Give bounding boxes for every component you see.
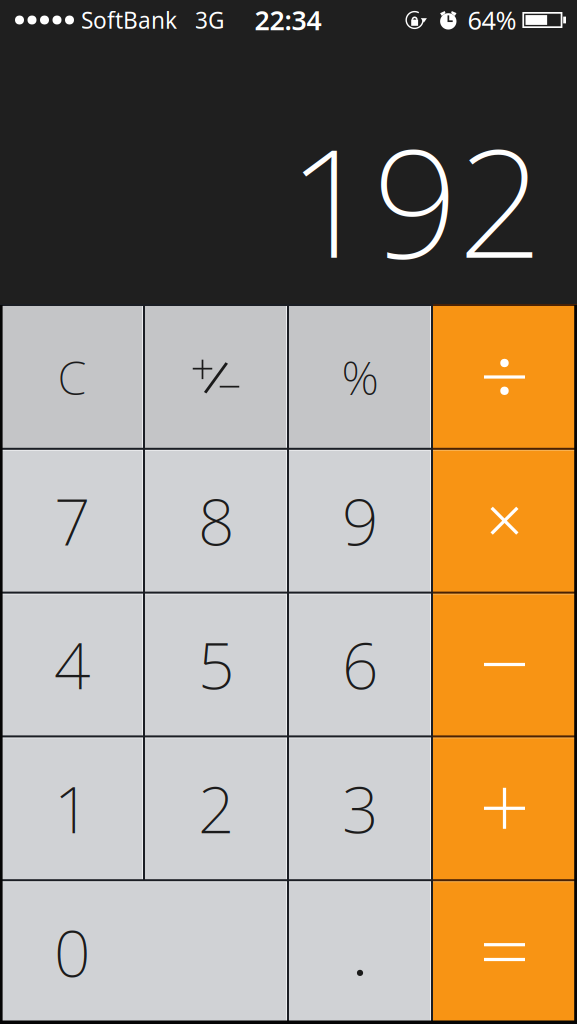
button[interactable]: 6 bbox=[288, 593, 432, 736]
button[interactable]: 4 bbox=[0, 593, 144, 736]
button[interactable]: decimal point bbox=[288, 880, 432, 1024]
button[interactable]: 8 bbox=[144, 449, 288, 593]
staticText: 64% bbox=[467, 3, 516, 37]
staticText: 0 bbox=[54, 910, 90, 995]
staticText: 4 bbox=[54, 622, 90, 707]
staticText: 1 bbox=[54, 766, 90, 851]
button[interactable]: 3 bbox=[288, 736, 432, 880]
button[interactable]: plus bbox=[432, 736, 577, 880]
staticText: C bbox=[57, 346, 86, 408]
button[interactable]: plus or minus bbox=[144, 305, 288, 449]
staticText: SoftBank bbox=[81, 5, 177, 35]
staticText: 5 bbox=[198, 622, 234, 707]
button[interactable]: 7 bbox=[0, 449, 144, 593]
staticText: 9 bbox=[342, 478, 378, 563]
button[interactable]: C bbox=[0, 305, 144, 449]
staticText: 7 bbox=[54, 478, 90, 563]
button[interactable]: 5 bbox=[144, 593, 288, 736]
button[interactable]: % bbox=[288, 305, 432, 449]
button[interactable]: equals bbox=[432, 880, 577, 1024]
button[interactable]: multiply bbox=[432, 449, 577, 593]
staticText: % bbox=[341, 346, 378, 408]
button[interactable]: 1 bbox=[0, 736, 144, 880]
staticText: 192 bbox=[288, 101, 543, 299]
staticText: 3G bbox=[195, 5, 225, 35]
staticText: 2 bbox=[198, 766, 234, 851]
staticText: 8 bbox=[198, 478, 234, 563]
button[interactable]: divide bbox=[432, 305, 577, 449]
staticText: 22:34 bbox=[254, 2, 321, 38]
button[interactable]: 0 bbox=[0, 880, 288, 1024]
staticText: 3 bbox=[342, 766, 378, 851]
button[interactable]: 2 bbox=[144, 736, 288, 880]
button[interactable]: minus bbox=[432, 593, 577, 736]
button[interactable]: 9 bbox=[288, 449, 432, 593]
staticText: 6 bbox=[342, 622, 378, 707]
